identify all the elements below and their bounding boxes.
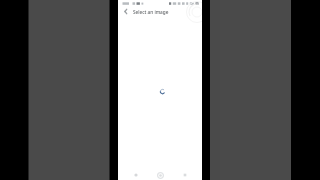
button[interactable]: Home (153, 170, 167, 180)
staticText: Select an image (133, 9, 169, 15)
button[interactable]: Recents (178, 170, 192, 180)
button[interactable]: Back (129, 170, 143, 180)
button[interactable]: Back (120, 6, 131, 17)
